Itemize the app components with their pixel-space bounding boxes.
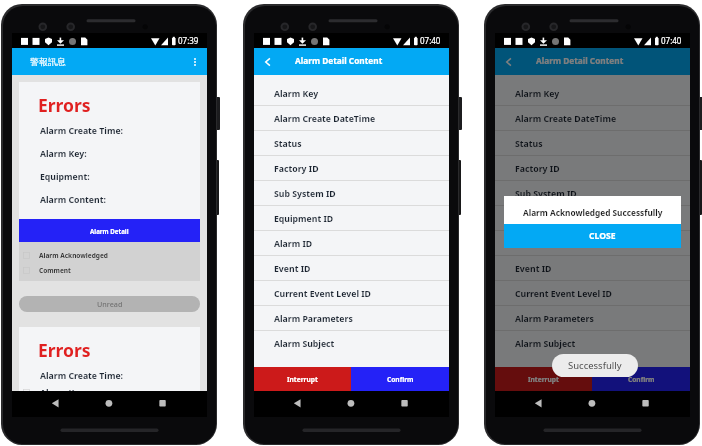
button[interactable]: Interrupt — [254, 367, 351, 391]
button[interactable]: Alarm Subject — [254, 331, 449, 356]
staticText: Alarm Detail Content — [295, 55, 383, 66]
staticText: Status — [274, 138, 302, 150]
staticText: Current Event Level ID — [274, 288, 371, 300]
staticText: Current Event Level ID — [515, 288, 612, 300]
button[interactable]: More options — [188, 55, 202, 69]
staticText: Alarm Parameters — [515, 313, 594, 325]
staticText: Event ID — [515, 263, 552, 275]
button[interactable]: Confirm — [351, 367, 449, 391]
button[interactable]: Alarm Create DateTime — [495, 106, 690, 131]
button[interactable]: Alarm Parameters — [254, 306, 449, 331]
button[interactable]: Alarm Key — [495, 81, 690, 106]
staticText: Alarm Subject — [515, 338, 576, 350]
button[interactable]: Current Event Level ID — [495, 281, 690, 306]
staticText: Alarm Create Time: — [40, 370, 124, 382]
staticText: Alarm Key — [274, 88, 319, 100]
staticText: Alarm Detail — [90, 227, 129, 235]
staticText: Successfully — [568, 359, 622, 372]
staticText: 07:40 — [420, 35, 441, 46]
staticText: Equipment: — [40, 171, 90, 183]
staticText: Comment — [39, 266, 71, 275]
staticText: Alarm Key — [515, 88, 560, 100]
staticText: Alarm Content: — [40, 194, 106, 206]
button[interactable]: Factory ID — [254, 156, 449, 181]
staticText: Equipment ID — [274, 213, 334, 225]
staticText: Alarm Create DateTime — [274, 113, 376, 125]
staticText: 07:39 — [178, 35, 199, 46]
button[interactable]: CLOSE — [504, 224, 681, 248]
button[interactable]: Alarm ID — [495, 231, 690, 256]
staticText: Alarm Parameters — [274, 313, 353, 325]
button[interactable]: Errors — [19, 82, 200, 281]
button[interactable]: Status — [254, 131, 449, 156]
staticText: Interrupt — [528, 375, 559, 384]
button[interactable]: Factory ID — [495, 156, 690, 181]
button[interactable]: Sub System ID — [495, 181, 690, 206]
button[interactable]: Alarm Subject — [495, 331, 690, 356]
button[interactable]: Current Event Level ID — [254, 281, 449, 306]
staticText: Alarm Create DateTime — [515, 113, 617, 125]
button[interactable]: Alarm Key — [254, 81, 449, 106]
staticText: Factory ID — [515, 163, 560, 175]
staticText: Sub System ID — [515, 188, 577, 200]
button[interactable]: Comment — [19, 266, 200, 275]
button[interactable]: Interrupt — [495, 367, 592, 391]
staticText: Sub System ID — [274, 188, 336, 200]
button[interactable]: Sub System ID — [254, 181, 449, 206]
staticText: Alarm Subject — [274, 338, 335, 350]
button[interactable]: Event ID — [495, 256, 690, 281]
button[interactable]: Equipment ID — [495, 206, 690, 231]
staticText: Alarm Create Time: — [40, 125, 124, 137]
staticText: Confirm — [628, 375, 655, 384]
staticText: Alarm Key: — [40, 148, 87, 160]
staticText: Equipment ID — [515, 213, 575, 225]
staticText: Alarm ID — [515, 238, 554, 250]
staticText: Alarm ID — [274, 238, 313, 250]
button[interactable]: Errors — [19, 327, 200, 391]
staticText: Event ID — [274, 263, 311, 275]
button[interactable]: Alarm ID — [254, 231, 449, 256]
staticText: 警報訊息 — [30, 56, 66, 67]
button[interactable]: Back — [503, 56, 515, 68]
staticText: 07:40 — [661, 35, 682, 46]
staticText: Factory ID — [274, 163, 319, 175]
staticText: Unread — [97, 299, 123, 309]
button[interactable]: Equipment ID — [254, 206, 449, 231]
staticText: Alarm Acknowledged — [39, 251, 108, 260]
button[interactable]: Back — [262, 56, 274, 68]
staticText: Confirm — [387, 375, 414, 384]
button[interactable]: Alarm Acknowledged — [19, 251, 200, 260]
staticText: Errors — [38, 93, 91, 117]
button[interactable]: Status — [495, 131, 690, 156]
button[interactable]: Event ID — [254, 256, 449, 281]
staticText: Alarm Acknowledged Successfully — [523, 207, 663, 218]
staticText: Alarm Detail Content — [536, 55, 624, 66]
button[interactable]: Confirm — [592, 367, 690, 391]
staticText: Status — [515, 138, 543, 150]
button[interactable]: Alarm Parameters — [495, 306, 690, 331]
staticText: Alarm Key: — [40, 387, 87, 391]
button[interactable]: Alarm Create DateTime — [254, 106, 449, 131]
staticText: Interrupt — [287, 375, 318, 384]
staticText: Errors — [38, 338, 91, 362]
button[interactable]: Unread — [19, 296, 200, 312]
button[interactable]: Alarm Detail — [19, 219, 200, 242]
staticText: CLOSE — [589, 230, 616, 242]
